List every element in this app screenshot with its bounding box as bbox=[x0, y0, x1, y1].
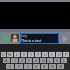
staticText: F bbox=[28, 58, 30, 63]
button[interactable]: U bbox=[42, 52, 48, 57]
button[interactable]: R bbox=[21, 52, 27, 57]
staticText: A bbox=[5, 58, 8, 63]
staticText: E bbox=[16, 52, 18, 57]
staticText: Z bbox=[9, 64, 12, 69]
staticText: X bbox=[18, 64, 21, 69]
button[interactable]: W bbox=[7, 52, 13, 57]
button[interactable]: O bbox=[56, 52, 62, 57]
staticText: R bbox=[23, 52, 26, 57]
button[interactable]: G bbox=[33, 58, 39, 63]
button[interactable]: I bbox=[49, 52, 55, 57]
staticText: L bbox=[63, 58, 65, 63]
button[interactable]: P bbox=[63, 52, 69, 57]
staticText: B bbox=[43, 64, 46, 69]
staticText: K bbox=[56, 58, 59, 63]
staticText: I bbox=[51, 52, 53, 57]
staticText: G bbox=[35, 58, 38, 63]
button[interactable]: Send bbox=[60, 34, 69, 43]
staticText: Joey bbox=[21, 34, 28, 38]
staticText: This is a test message!! bbox=[21, 38, 58, 43]
button[interactable]: Add attachment bbox=[1, 34, 10, 43]
staticText: U bbox=[44, 52, 47, 57]
staticText: N bbox=[51, 64, 54, 69]
staticText: H bbox=[42, 58, 45, 63]
button[interactable]: K bbox=[54, 58, 60, 63]
button[interactable]: T bbox=[28, 52, 34, 57]
button[interactable]: J bbox=[47, 58, 53, 63]
staticText: Y bbox=[37, 52, 40, 57]
button[interactable]: D bbox=[19, 58, 25, 63]
staticText: O bbox=[58, 52, 61, 57]
button[interactable]: E bbox=[14, 52, 20, 57]
button[interactable]: Contact avatar bbox=[11, 34, 19, 42]
staticText: W bbox=[8, 52, 12, 57]
staticText: S bbox=[14, 58, 16, 63]
button[interactable]: Y bbox=[35, 52, 41, 57]
button[interactable]: F bbox=[26, 58, 32, 63]
staticText: Q bbox=[2, 52, 5, 57]
button[interactable]: A bbox=[3, 58, 10, 63]
button[interactable]: Q bbox=[1, 52, 6, 57]
button[interactable]: Joey bbox=[20, 33, 59, 44]
staticText: J bbox=[49, 58, 51, 63]
staticText: V bbox=[35, 64, 38, 69]
button[interactable]: V bbox=[33, 64, 40, 69]
staticText: M bbox=[59, 64, 63, 69]
staticText: P bbox=[65, 52, 68, 57]
button[interactable]: M bbox=[57, 64, 64, 69]
button[interactable]: H bbox=[40, 58, 46, 63]
button[interactable]: N bbox=[49, 64, 56, 69]
staticText: T bbox=[30, 52, 32, 57]
button[interactable]: S bbox=[11, 58, 18, 63]
button[interactable]: C bbox=[24, 64, 32, 69]
button[interactable]: L bbox=[61, 58, 67, 63]
button[interactable]: Z bbox=[6, 64, 14, 69]
staticText: C bbox=[27, 64, 30, 69]
staticText: D bbox=[21, 58, 24, 63]
button[interactable]: B bbox=[41, 64, 48, 69]
button[interactable]: X bbox=[15, 64, 23, 69]
